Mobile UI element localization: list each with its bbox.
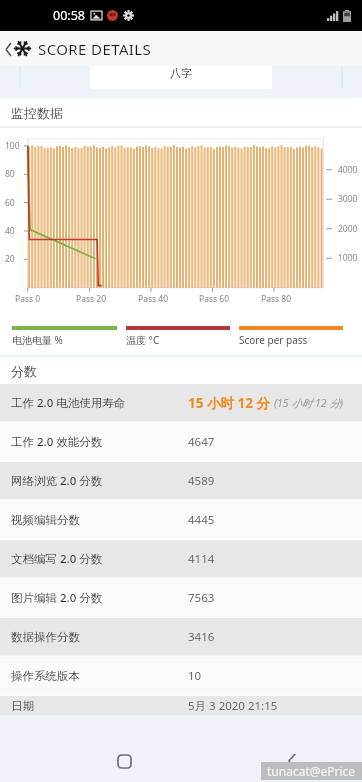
staticText: 1000	[338, 252, 358, 264]
staticText: 10	[188, 668, 202, 684]
staticText: SCORE DETAILS	[38, 39, 152, 59]
staticText: tunacat@ePrice	[267, 763, 356, 779]
staticText: 八字	[170, 66, 192, 80]
staticText: Pass 40	[138, 293, 168, 305]
button[interactable]: 日期	[0, 696, 362, 716]
staticText: 00:58	[53, 7, 85, 24]
staticText: 20	[5, 253, 15, 265]
staticText: 3416	[188, 629, 215, 645]
staticText: 视频编辑分数	[11, 513, 80, 527]
staticText: 分数	[11, 363, 37, 379]
staticText: Pass 0	[15, 293, 41, 305]
button[interactable]: 网络浏览 2.0 分数	[0, 462, 362, 500]
button[interactable]: 文档编写 2.0 分数	[0, 540, 362, 578]
staticText: 数据操作分数	[11, 630, 80, 644]
staticText: 4445	[188, 512, 215, 528]
staticText: 工作 2.0 效能分数	[11, 434, 103, 450]
staticText: Pass 20	[76, 293, 106, 305]
staticText: 网络浏览 2.0 分数	[11, 473, 103, 489]
button[interactable]: Back	[0, 35, 14, 63]
staticText: 7563	[188, 590, 215, 606]
staticText: 2000	[338, 223, 358, 235]
staticText: 文档编写 2.0 分数	[11, 551, 103, 567]
staticText: 15 小时 12 分	[188, 394, 270, 412]
staticText: 3000	[338, 193, 358, 205]
staticText: 日期	[11, 699, 34, 713]
staticText: 工作 2.0 电池使用寿命	[11, 395, 126, 411]
staticText: 100	[5, 140, 20, 152]
button[interactable]: Back	[275, 744, 309, 778]
staticText: 4589	[188, 473, 215, 489]
staticText: 监控数据	[11, 105, 63, 121]
button[interactable]: 操作系统版本	[0, 657, 362, 695]
staticText: 40	[5, 225, 15, 237]
button[interactable]: 工作 2.0 效能分数	[0, 423, 362, 461]
staticText: Pass 80	[261, 293, 291, 305]
staticText: 80	[5, 168, 15, 180]
staticText: 电池电量 %	[12, 333, 63, 347]
staticText: Pass 60	[199, 293, 229, 305]
staticText: Score per pass	[239, 333, 308, 347]
staticText: 4000	[338, 164, 358, 176]
button[interactable]: Home	[107, 744, 141, 778]
staticText: 5月 3 2020 21:15	[188, 698, 278, 714]
staticText: 图片编辑 2.0 分数	[11, 590, 103, 606]
staticText: 操作系统版本	[11, 669, 80, 683]
staticText: (15 小时 12 分)	[274, 396, 343, 410]
button[interactable]: 视频编辑分数	[0, 501, 362, 539]
staticText: 温度 °C	[126, 333, 160, 347]
button[interactable]: 图片编辑 2.0 分数	[0, 579, 362, 617]
button[interactable]: 工作 2.0 电池使用寿命	[0, 384, 362, 422]
button[interactable]: 数据操作分数	[0, 618, 362, 656]
staticText: 60	[5, 197, 15, 209]
staticText: 4647	[188, 434, 215, 450]
staticText: 4114	[188, 551, 215, 567]
